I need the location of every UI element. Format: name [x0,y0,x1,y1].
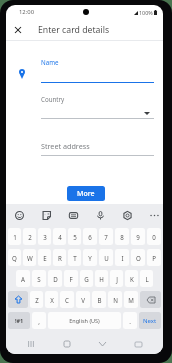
staticText: E [43,254,47,262]
button[interactable]: Home [57,334,77,354]
staticText: Street address [41,141,90,151]
button[interactable]: Emoji [12,208,26,222]
button[interactable]: V [76,291,90,308]
staticText: 2 [28,233,32,241]
staticText: R [58,254,62,262]
button[interactable]: M [124,291,138,308]
button[interactable]: English (US) [48,312,121,329]
button[interactable]: 7 [99,228,113,245]
button[interactable]: shift [8,291,28,308]
staticText: , [38,317,40,325]
staticText: 0 [152,233,156,241]
button[interactable]: E [38,249,51,266]
staticText: B [97,296,102,304]
button[interactable]: Q [8,249,21,266]
button[interactable]: X [45,291,58,308]
staticText: Name [41,58,59,66]
button[interactable]: K [125,270,138,287]
staticText: Country [41,95,65,103]
button[interactable]: Hide keyboard [128,334,148,354]
button[interactable]: O [131,249,145,266]
staticText: . [129,317,131,325]
button[interactable]: P [147,249,161,266]
staticText: !#1 [15,317,24,324]
button[interactable]: More options [147,208,161,222]
button[interactable]: . [123,312,137,329]
button[interactable]: 3 [38,228,51,245]
staticText: Next [143,317,157,325]
button[interactable]: Close [6,19,30,40]
button[interactable]: F [64,270,78,287]
staticText: I [121,254,124,262]
staticText: M [128,296,134,304]
staticText: 100% [139,9,153,16]
staticText: 1 [13,233,17,241]
staticText: 8 [120,233,124,241]
button[interactable]: sym [8,312,30,329]
button[interactable]: D [48,270,62,287]
button[interactable]: GIF [66,208,80,222]
staticText: 7 [104,233,108,241]
button[interactable]: U [99,249,113,266]
button[interactable]: More [67,186,105,201]
staticText: 5 [73,233,77,241]
staticText: X [50,296,54,304]
button[interactable]: H [95,270,108,287]
button[interactable]: 4 [53,228,66,245]
staticText: 3 [43,233,47,241]
button[interactable]: , [32,312,46,329]
button[interactable]: Recent apps [21,334,41,354]
staticText: S [37,275,41,283]
staticText: F [69,275,73,283]
staticText: L [145,275,149,283]
button[interactable]: R [53,249,66,266]
button[interactable]: W [23,249,36,266]
staticText: U [104,254,109,262]
button[interactable]: Settings [120,208,134,222]
button[interactable]: 6 [83,228,97,245]
button[interactable]: Voice input [93,208,107,222]
button[interactable]: B [92,291,106,308]
button[interactable]: 9 [131,228,145,245]
staticText: Q [12,254,17,262]
staticText: Z [35,296,39,304]
button[interactable]: G [80,270,93,287]
button[interactable]: Back [92,334,112,354]
button[interactable]: 8 [115,228,129,245]
button[interactable]: 2 [23,228,36,245]
staticText: T [73,254,77,262]
button[interactable]: Stickers [39,208,53,222]
staticText: H [99,275,104,283]
staticText: 4 [58,233,62,241]
staticText: J [116,275,118,283]
staticText: N [113,296,118,304]
button[interactable]: J [110,270,123,287]
button[interactable]: I [115,249,129,266]
staticText: W [27,254,33,262]
button[interactable]: del [140,291,161,308]
button[interactable]: C [60,291,74,308]
button[interactable]: next [139,312,161,329]
staticText: 12:00 [19,8,35,16]
staticText: English (US) [69,317,100,324]
button[interactable]: 1 [8,228,21,245]
staticText: O [136,254,141,262]
button[interactable]: Z [30,291,43,308]
other: Location [19,69,25,79]
button[interactable]: Y [83,249,97,266]
button[interactable]: 0 [147,228,161,245]
button[interactable]: A [16,270,30,287]
button[interactable]: N [108,291,122,308]
button[interactable]: S [32,270,46,287]
staticText: 6 [88,233,92,241]
staticText: V [81,296,85,304]
staticText: C [65,296,69,304]
staticText: P [152,254,156,262]
staticText: Enter card details [38,24,110,36]
button[interactable]: L [140,270,153,287]
staticText: G [84,275,89,283]
staticText: K [130,275,134,283]
button[interactable]: 5 [68,228,81,245]
button[interactable]: T [68,249,81,266]
staticText: 9 [136,233,140,241]
